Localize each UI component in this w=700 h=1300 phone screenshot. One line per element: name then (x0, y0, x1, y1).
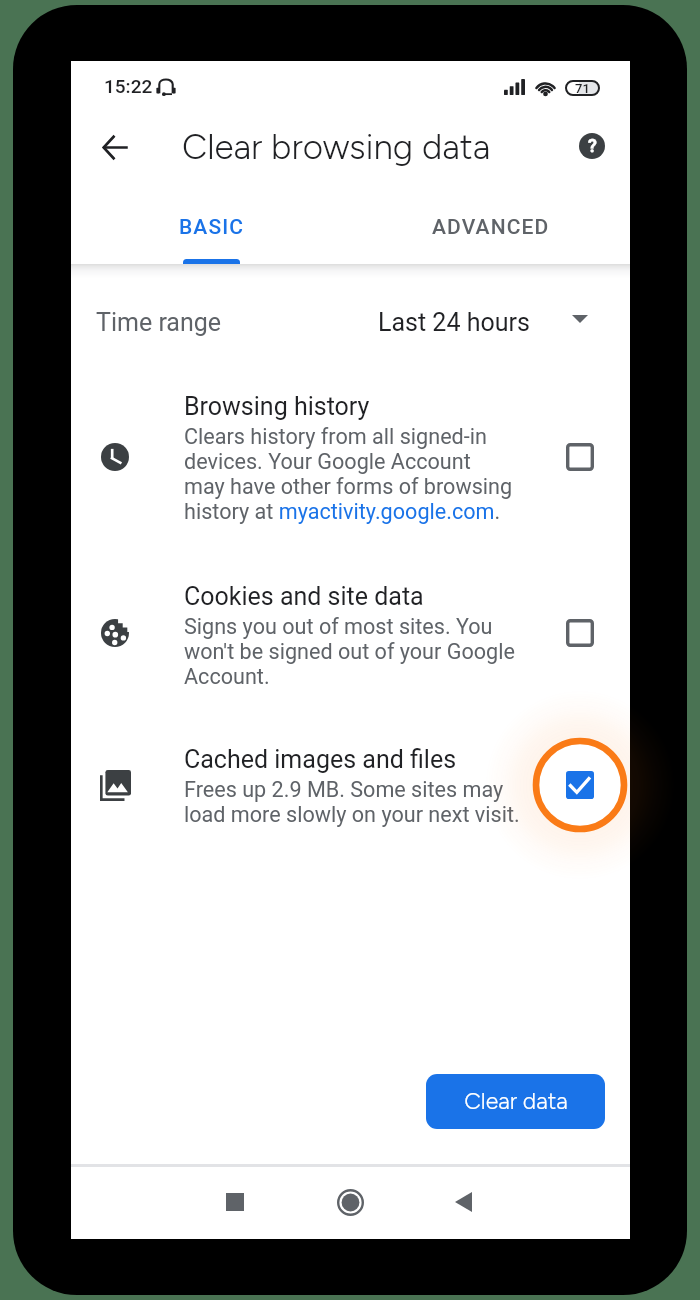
button[interactable]: Help (568, 122, 616, 170)
staticText: BASIC (179, 215, 245, 240)
staticText: Cached images and files (184, 745, 457, 774)
button[interactable]: Time range (71, 266, 630, 381)
staticText: Signs you out of most sites. You won't b… (184, 614, 515, 689)
staticText: Clear data (464, 1087, 568, 1115)
staticText: Cookies and site data (184, 582, 424, 611)
staticText: 15:22 (104, 75, 153, 97)
button[interactable]: Recent apps (209, 1176, 261, 1228)
staticText: Browsing history (184, 392, 370, 421)
staticText: ? (588, 135, 597, 156)
button[interactable]: Back (437, 1176, 489, 1228)
button[interactable]: Home (324, 1176, 376, 1228)
staticText: Clears history from all signed-in device… (184, 424, 513, 524)
button[interactable]: Back (91, 123, 139, 171)
button[interactable]: BASIC (71, 196, 350, 266)
button[interactable]: Cached images and files (71, 725, 630, 875)
staticText: Clear browsing data (182, 126, 491, 168)
button[interactable]: Browsing history checkbox (556, 433, 604, 481)
button[interactable]: ADVANCED (350, 196, 630, 266)
staticText: Time range (96, 308, 222, 337)
button[interactable]: Cached images and files checkbox, checke… (556, 761, 604, 809)
staticText: Last 24 hours (378, 308, 530, 337)
button[interactable]: Cookies and site data checkbox (556, 609, 604, 657)
button[interactable]: Browsing history (71, 372, 630, 522)
staticText: ADVANCED (432, 215, 550, 240)
staticText: 71 (575, 81, 590, 96)
staticText: Frees up 2.9 MB. Some sites may load mor… (184, 777, 520, 827)
button[interactable]: Cookies and site data (71, 562, 630, 712)
button[interactable]: Clear data (426, 1074, 605, 1129)
